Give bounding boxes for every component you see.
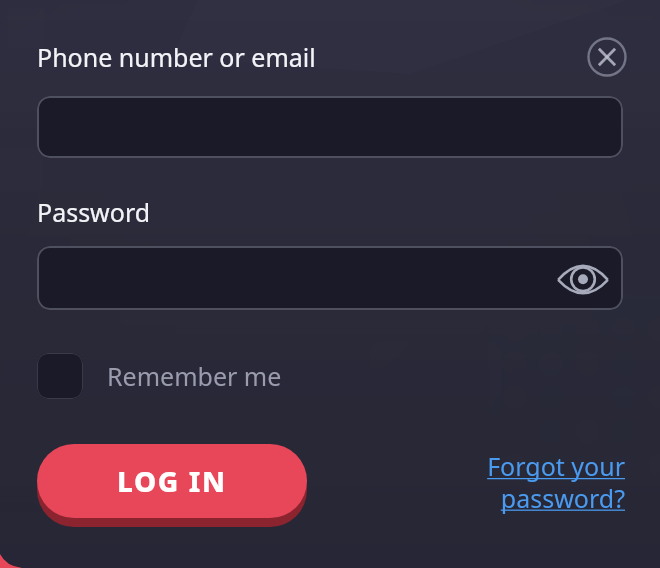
button[interactable]: Show password xyxy=(556,251,610,305)
button[interactable]: Remember me xyxy=(37,353,282,399)
staticText: Forgot your password? xyxy=(487,449,625,515)
button[interactable]: Forgot your password? xyxy=(485,447,627,517)
button[interactable]: Close xyxy=(586,36,628,78)
staticText: Phone number or email xyxy=(37,40,316,74)
staticText: Password xyxy=(37,195,151,229)
button[interactable]: LOG IN xyxy=(37,444,307,518)
button[interactable]: Show password xyxy=(37,246,623,310)
button[interactable] xyxy=(37,96,623,158)
staticText: LOG IN xyxy=(117,462,227,500)
staticText: Remember me xyxy=(107,359,282,393)
